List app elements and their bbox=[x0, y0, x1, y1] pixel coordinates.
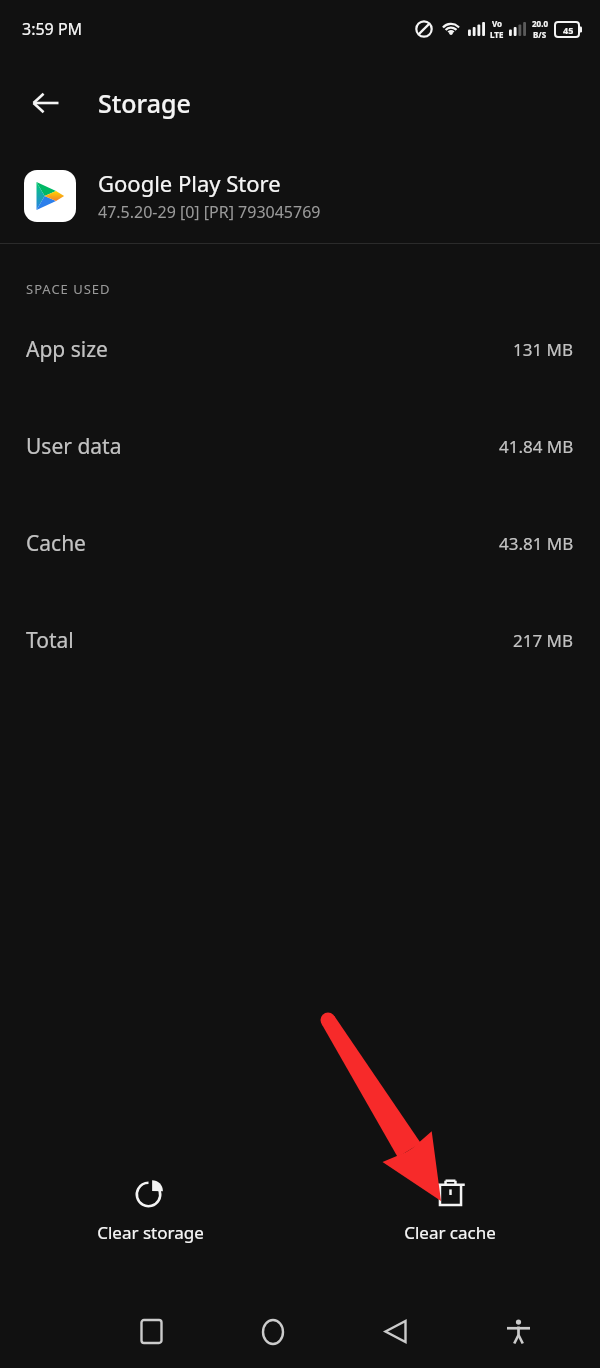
staticText: Clear storage bbox=[97, 1221, 204, 1244]
staticText: Google Play Store bbox=[98, 168, 281, 198]
button[interactable]: Cache bbox=[0, 528, 600, 558]
staticText: App size bbox=[26, 335, 108, 364]
staticText: Vo bbox=[492, 18, 503, 29]
button[interactable]: Home bbox=[212, 1295, 334, 1368]
staticText: B/S bbox=[533, 29, 547, 40]
button[interactable]: Back bbox=[334, 1295, 457, 1368]
staticText: 3:59 PM bbox=[22, 18, 83, 40]
staticText: SPACE USED bbox=[26, 280, 111, 298]
button[interactable]: App size bbox=[0, 334, 600, 364]
button[interactable]: Recents bbox=[90, 1295, 212, 1368]
staticText: 217 MB bbox=[513, 629, 574, 652]
staticText: 131 MB bbox=[513, 338, 574, 361]
staticText: LTE bbox=[490, 29, 504, 40]
staticText: Clear cache bbox=[404, 1221, 496, 1244]
button[interactable]: Clear storage bbox=[0, 1177, 300, 1244]
button[interactable]: Google Play Store bbox=[0, 148, 600, 243]
staticText: 20.0 bbox=[532, 18, 548, 29]
staticText: 47.5.20-29 [0] [PR] 793045769 bbox=[98, 201, 321, 223]
staticText: Cache bbox=[26, 529, 86, 558]
staticText: 43.81 MB bbox=[499, 532, 574, 555]
button[interactable]: Back bbox=[18, 75, 74, 131]
button[interactable]: Total bbox=[0, 625, 600, 655]
staticText: Total bbox=[26, 626, 74, 655]
button[interactable]: User data bbox=[0, 431, 600, 461]
staticText: 45 bbox=[563, 24, 574, 36]
staticText: 41.84 MB bbox=[499, 435, 574, 458]
button[interactable]: Clear cache bbox=[300, 1177, 600, 1244]
staticText: User data bbox=[26, 432, 122, 461]
button[interactable]: Accessibility bbox=[457, 1295, 580, 1368]
staticText: Storage bbox=[98, 86, 191, 120]
